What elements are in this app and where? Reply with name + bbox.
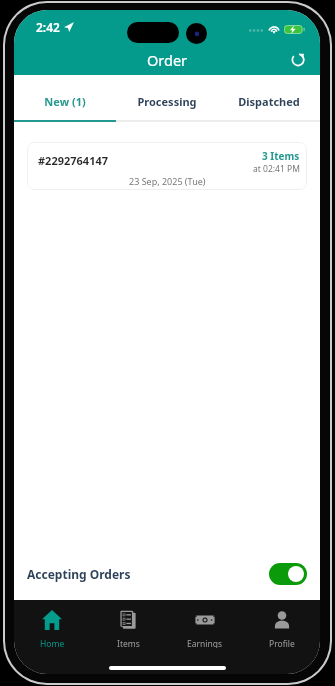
button[interactable]: Refresh bbox=[287, 48, 309, 70]
staticText: Home bbox=[40, 638, 65, 648]
staticText: at 02:41 PM bbox=[253, 163, 300, 175]
staticText: Processing bbox=[137, 94, 197, 109]
staticText: Dispatched bbox=[238, 94, 300, 109]
staticText: 2:42 bbox=[36, 19, 60, 35]
button[interactable]: Home bbox=[14, 600, 90, 648]
staticText: Earnings bbox=[187, 638, 223, 648]
button[interactable]: New (1) bbox=[14, 83, 116, 120]
button[interactable]: Dispatched bbox=[218, 83, 320, 120]
staticText: Profile bbox=[269, 638, 295, 648]
staticText: 3 Items bbox=[262, 149, 300, 163]
button[interactable]: Earnings bbox=[166, 600, 243, 648]
staticText: #2292764147 bbox=[38, 153, 109, 168]
staticText: Order bbox=[147, 50, 188, 70]
button[interactable]: Processing bbox=[116, 83, 218, 120]
button[interactable]: Accepting Orders bbox=[27, 553, 307, 595]
button[interactable]: Accepting orders toggle bbox=[269, 563, 307, 585]
staticText: Accepting Orders bbox=[27, 566, 131, 582]
button[interactable]: Items bbox=[90, 600, 166, 648]
button[interactable]: Profile bbox=[243, 600, 320, 648]
staticText: Items bbox=[117, 638, 140, 648]
staticText: 23 Sep, 2025 (Tue) bbox=[129, 175, 206, 187]
button[interactable]: #2292764147 bbox=[27, 142, 307, 190]
staticText: New (1) bbox=[44, 94, 86, 109]
